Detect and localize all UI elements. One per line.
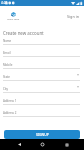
staticText: City bbox=[3, 87, 9, 91]
staticText: LOGO HERE bbox=[7, 18, 20, 21]
staticText: Name bbox=[3, 39, 12, 43]
button[interactable]: Recent apps bbox=[60, 139, 74, 150]
button[interactable]: Email bbox=[0, 45, 84, 57]
button[interactable]: Name bbox=[0, 33, 84, 45]
staticText: Email bbox=[3, 51, 11, 55]
button[interactable]: Address 2 bbox=[0, 105, 84, 117]
button[interactable]: State bbox=[0, 69, 84, 81]
staticText: Sign in bbox=[67, 14, 80, 19]
button[interactable]: Address 1 bbox=[0, 93, 84, 105]
button[interactable]: City bbox=[0, 81, 84, 93]
button[interactable]: Mobile bbox=[0, 57, 84, 69]
staticText: Address 1 bbox=[3, 99, 17, 103]
staticText: 4:24 bbox=[1, 1, 8, 5]
staticText: Address 2 bbox=[3, 111, 17, 115]
button[interactable]: Home bbox=[35, 139, 49, 150]
staticText: SIGNUP bbox=[36, 132, 49, 137]
button[interactable]: Sign in bbox=[63, 10, 84, 23]
staticText: Create new account bbox=[3, 30, 44, 36]
button[interactable]: Back bbox=[12, 139, 26, 150]
button[interactable]: SIGNUP bbox=[4, 130, 80, 139]
staticText: State bbox=[3, 75, 10, 79]
staticText: Mobile bbox=[3, 63, 13, 67]
